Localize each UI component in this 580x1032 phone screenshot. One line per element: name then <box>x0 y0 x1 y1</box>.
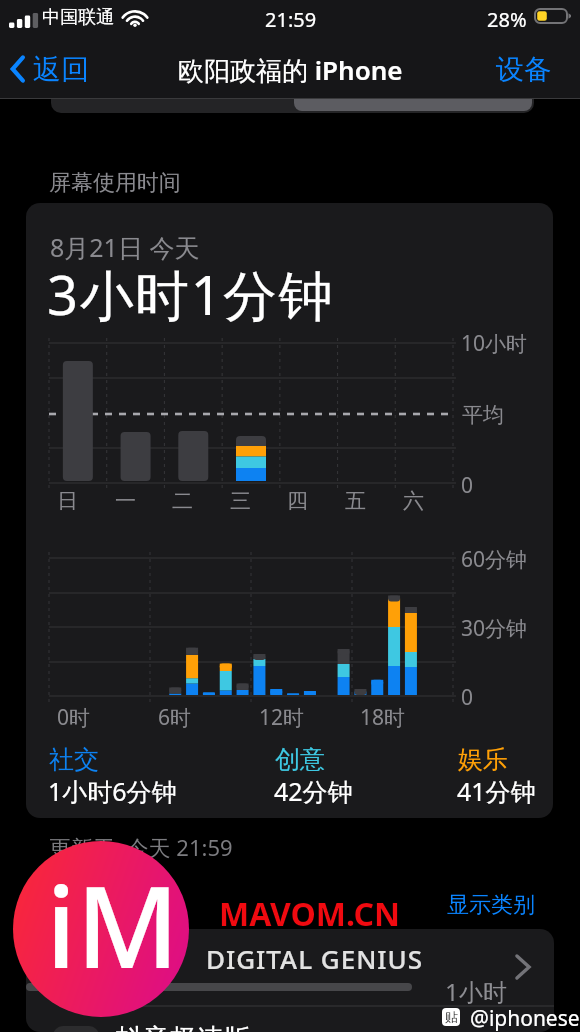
button[interactable]: 设备 <box>486 48 562 90</box>
staticText: 60分钟 <box>461 545 528 574</box>
staticText: 贴 <box>445 1009 458 1025</box>
staticText: 创意 <box>275 744 325 775</box>
staticText: 一 <box>115 488 136 514</box>
staticText: 四 <box>287 488 308 514</box>
staticText: 10小时 <box>461 329 528 358</box>
button[interactable]: 显示类别 <box>447 891 535 919</box>
staticText: 18时 <box>360 703 406 732</box>
staticText: DIGITAL GENIUS <box>206 941 424 976</box>
staticText: 21:59 <box>265 6 317 33</box>
staticText: 0 <box>461 471 474 500</box>
staticText: 抖音极速版 <box>116 1022 251 1032</box>
staticText: 设备 <box>496 52 552 87</box>
staticText: 平均 <box>462 402 504 428</box>
staticText: 欧阳政福的 iPhone <box>178 52 403 88</box>
staticText: 屏幕使用时间 <box>49 169 181 197</box>
button[interactable]: 返回 <box>4 48 89 90</box>
staticText: 三 <box>230 488 251 514</box>
staticText: 返回 <box>33 52 89 87</box>
staticText: 0 <box>461 683 474 712</box>
staticText: 12时 <box>259 703 305 732</box>
staticText: 41分钟 <box>457 774 536 808</box>
staticText: 6时 <box>158 703 192 732</box>
staticText: 3小时1分钟 <box>47 257 335 331</box>
staticText: 二 <box>172 488 193 514</box>
button[interactable]: 抖音极速版 <box>26 1006 554 1032</box>
staticText: 更新于: 今天 21:59 <box>49 832 233 862</box>
staticText: 42分钟 <box>274 774 353 808</box>
staticText: 1小时6分钟 <box>48 774 177 808</box>
staticText: 六 <box>403 488 424 514</box>
staticText: 中国联通 <box>42 6 114 29</box>
staticText: 1小时 <box>445 975 507 1008</box>
button[interactable] <box>51 62 534 113</box>
other: Show details <box>515 956 531 978</box>
staticText: 五 <box>345 488 366 514</box>
button[interactable]: Show details <box>26 929 554 1006</box>
staticText: 0时 <box>57 703 91 732</box>
staticText: 28% <box>487 6 527 33</box>
staticText: MAVOM.CN <box>219 892 400 936</box>
staticText: 娱乐 <box>458 744 508 775</box>
staticText: 社交 <box>49 744 99 775</box>
staticText: @iphonese3吧 <box>470 1004 580 1032</box>
staticText: 30分钟 <box>461 614 528 643</box>
staticText: 日 <box>57 488 78 514</box>
staticText: 8月21日 今天 <box>50 230 200 264</box>
staticText: iM <box>46 848 180 1001</box>
